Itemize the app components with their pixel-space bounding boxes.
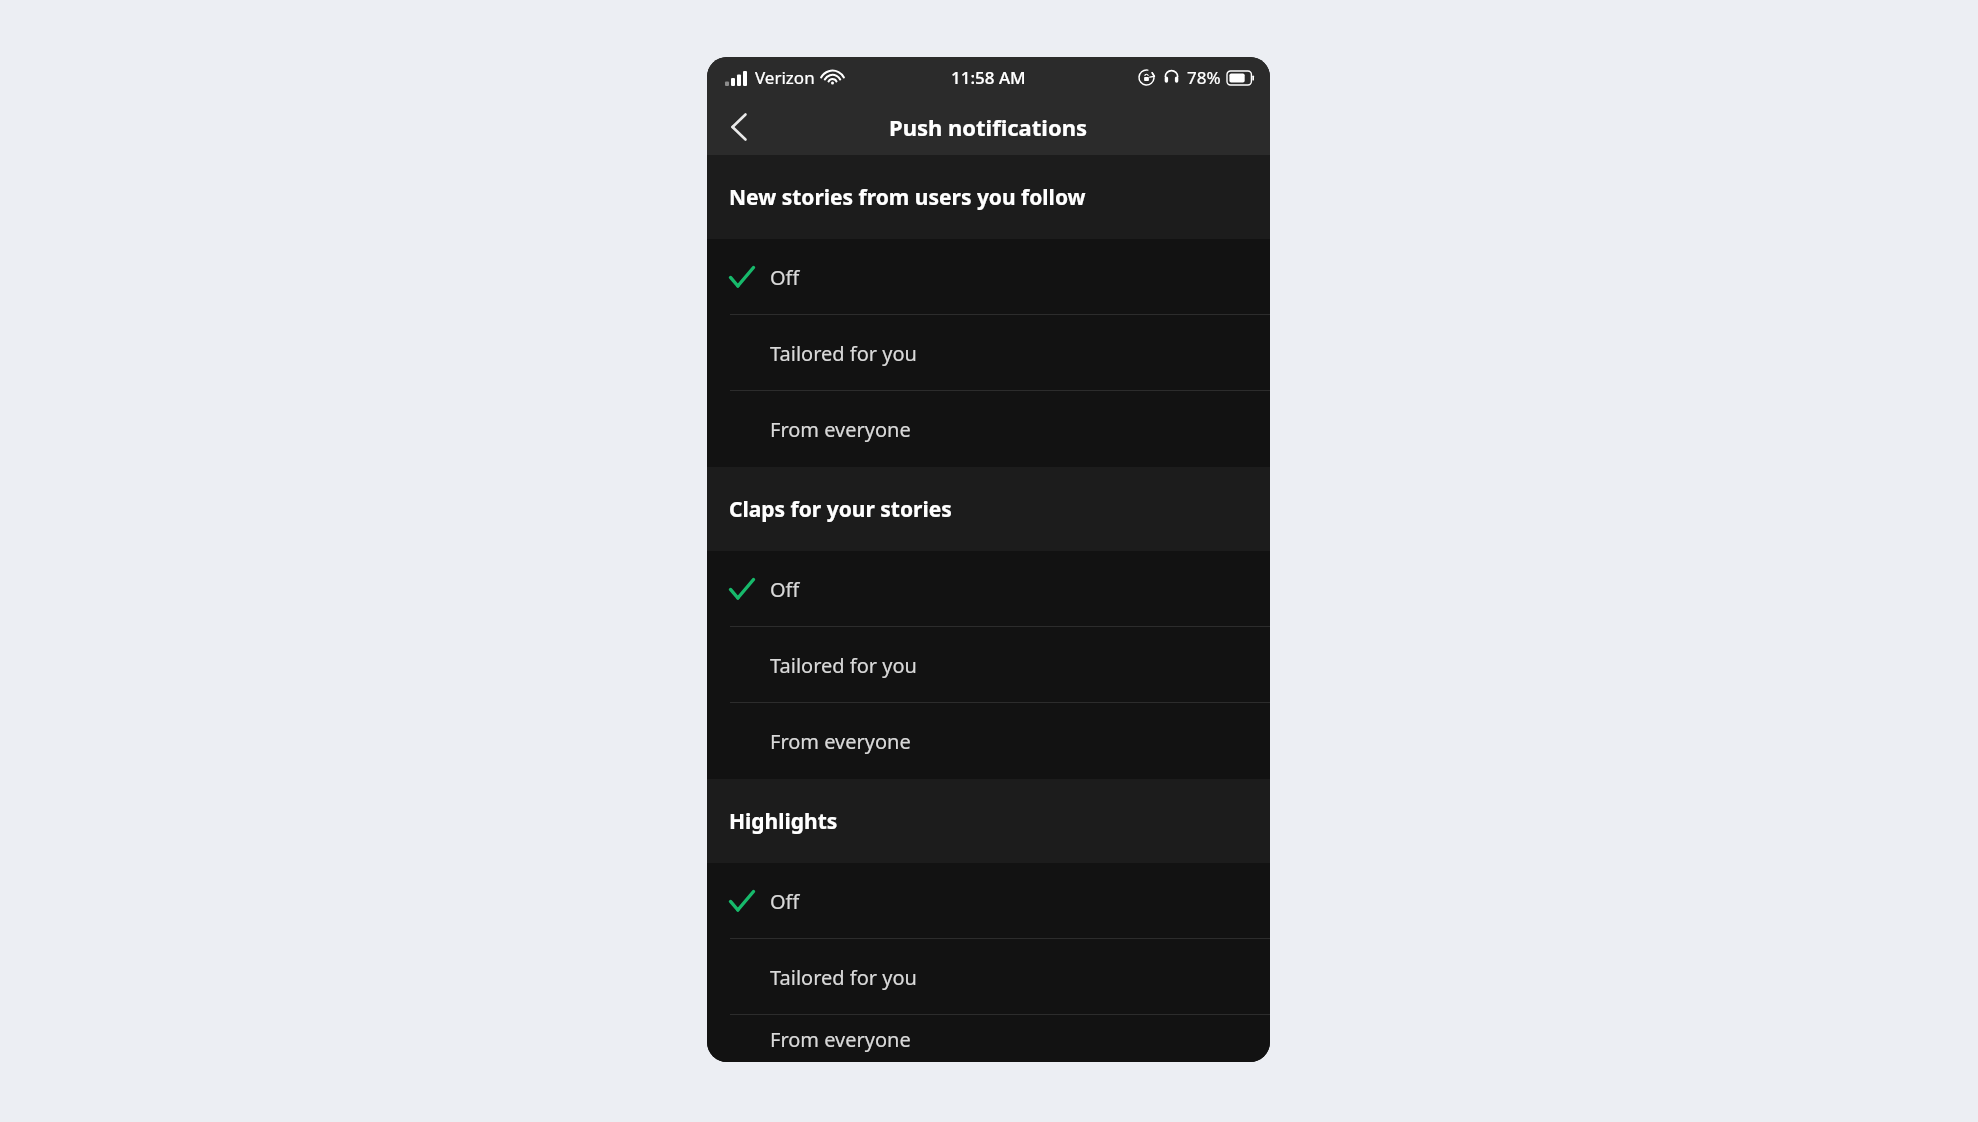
button[interactable]: From everyone (707, 391, 1270, 467)
button[interactable]: Off (707, 863, 1270, 939)
staticText: Verizon (755, 66, 815, 89)
button[interactable]: Back (715, 103, 763, 151)
button[interactable]: Tailored for you (707, 627, 1270, 703)
staticText: 11:58 AM (951, 66, 1026, 89)
staticText: Off (770, 888, 800, 915)
staticText: 78% (1187, 66, 1221, 89)
button[interactable]: Off (707, 239, 1270, 315)
staticText: Off (770, 264, 800, 291)
staticText: Highlights (729, 807, 838, 836)
button[interactable]: Tailored for you (707, 315, 1270, 391)
staticText: New stories from users you follow (729, 183, 1086, 212)
staticText: Tailored for you (770, 964, 917, 991)
staticText: Tailored for you (770, 340, 917, 367)
staticText: Push notifications (889, 112, 1088, 142)
button[interactable]: From everyone (707, 703, 1270, 779)
staticText: From everyone (770, 416, 911, 443)
button[interactable]: Off (707, 551, 1270, 627)
staticText: Tailored for you (770, 652, 917, 679)
staticText: From everyone (770, 1026, 911, 1053)
staticText: Claps for your stories (729, 495, 952, 524)
staticText: From everyone (770, 728, 911, 755)
button[interactable]: From everyone (707, 1015, 1270, 1062)
button[interactable]: Tailored for you (707, 939, 1270, 1015)
staticText: Off (770, 576, 800, 603)
